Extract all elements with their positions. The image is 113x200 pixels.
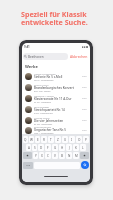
staticText: mehr xyxy=(82,119,87,122)
staticText: D xyxy=(40,146,43,150)
button[interactable]: E xyxy=(35,136,40,143)
button[interactable]: M xyxy=(73,152,79,159)
button[interactable]: JOHANNES BRAHMS xyxy=(25,126,87,134)
staticText: RV 269 · Violinkonzert xyxy=(34,123,53,125)
button[interactable]: I xyxy=(69,136,75,143)
staticText: P xyxy=(85,138,87,142)
staticText: Q xyxy=(24,138,27,142)
staticText: Die vier Jahreszeiten xyxy=(34,119,64,123)
staticText: BWV 1048 · Konzert xyxy=(34,90,51,92)
staticText: Sinfonie Nr. 5 c-Moll xyxy=(34,75,63,79)
button[interactable]: Shift xyxy=(23,152,32,159)
button[interactable]: S xyxy=(32,144,37,151)
button[interactable]: A xyxy=(26,144,31,151)
button[interactable]: N xyxy=(66,152,72,159)
button[interactable]: U xyxy=(62,136,68,143)
staticText: M xyxy=(75,154,78,158)
button[interactable]: B xyxy=(59,152,65,159)
staticText: 9:41 xyxy=(24,45,30,49)
staticText: Klaviersonate Nr. 11 A-Dur xyxy=(34,97,72,101)
staticText: X xyxy=(41,154,43,158)
staticText: B xyxy=(61,154,64,158)
staticText: mehr xyxy=(82,86,87,89)
button[interactable]: C xyxy=(45,152,51,159)
button[interactable]: Search xyxy=(81,161,89,169)
button[interactable]: X xyxy=(39,152,44,159)
staticText: FRANZ SCHUBERT xyxy=(34,106,50,108)
button[interactable]: Q xyxy=(23,136,28,143)
staticText: A xyxy=(28,146,30,150)
staticText: G xyxy=(54,146,57,150)
button[interactable]: Delete xyxy=(80,152,89,159)
staticText: WOLFGANG A. MOZART xyxy=(34,95,54,97)
staticText: JOHANN S. BACH xyxy=(34,84,49,86)
staticText: Brandenburgisches Konzert xyxy=(34,86,74,90)
staticText: Werke xyxy=(25,64,38,69)
staticText: Z xyxy=(57,138,59,142)
staticText: T xyxy=(50,138,52,142)
staticText: mehr xyxy=(82,108,87,111)
button[interactable]: W xyxy=(29,136,34,143)
staticText: WoO 1 · Orchesterwerk xyxy=(34,132,54,134)
button[interactable]: Abbrechen xyxy=(70,54,88,59)
staticText: E xyxy=(37,138,39,142)
button[interactable]: G xyxy=(52,144,58,151)
button[interactable]: F xyxy=(45,144,51,151)
button[interactable]: LUDWIG VAN BEETHOVEN xyxy=(25,71,87,82)
button[interactable]: V xyxy=(52,152,58,159)
button[interactable]: O xyxy=(76,136,82,143)
staticText: Speziell für Klassik entwickelte Suche. xyxy=(21,9,88,27)
button[interactable]: T xyxy=(48,136,54,143)
staticText: N xyxy=(68,154,71,158)
staticText: Ungarischer Tanz Nr. 5 xyxy=(34,128,67,132)
button[interactable]: Numbers xyxy=(23,162,33,169)
staticText: mehr xyxy=(82,75,87,78)
button[interactable]: P xyxy=(83,136,89,143)
staticText: Streichquartett Nr. 14 xyxy=(34,108,65,112)
button[interactable]: H xyxy=(59,144,65,151)
button[interactable]: ANTONIO VIVALDI xyxy=(25,115,87,126)
staticText: F xyxy=(47,146,49,150)
staticText: Beethoven xyxy=(28,55,44,59)
button[interactable]: Z xyxy=(55,136,61,143)
staticText: J xyxy=(69,146,70,150)
staticText: V xyxy=(54,154,56,158)
button[interactable]: D xyxy=(38,144,44,151)
button[interactable]: Beethoven xyxy=(23,53,68,60)
staticText: ANTONIO VIVALDI xyxy=(34,117,50,119)
button[interactable]: Y xyxy=(33,152,38,159)
staticText: U xyxy=(64,138,67,142)
staticText: mehr xyxy=(82,129,87,132)
staticText: W xyxy=(30,138,33,142)
button[interactable]: R xyxy=(41,136,47,143)
button[interactable]: J xyxy=(66,144,72,151)
staticText: H xyxy=(61,146,64,150)
button[interactable]: WOLFGANG A. MOZART xyxy=(25,93,87,104)
button[interactable]: L xyxy=(80,144,86,151)
staticText: D 810 · Kammermusik xyxy=(34,112,53,114)
staticText: mehr xyxy=(82,97,87,100)
staticText: KV 331 · Klavierwerk xyxy=(34,101,52,103)
staticText: O xyxy=(78,138,81,142)
staticText: JOHANNES BRAHMS xyxy=(34,126,51,128)
staticText: LUDWIG VAN BEETHOVEN xyxy=(34,73,56,75)
button[interactable]: K xyxy=(73,144,79,151)
staticText: I xyxy=(71,138,73,142)
staticText: C xyxy=(47,154,49,158)
staticText: R xyxy=(43,138,45,142)
staticText: Y xyxy=(35,154,37,158)
button[interactable]: JOHANN S. BACH xyxy=(25,82,87,93)
staticText: K xyxy=(75,146,77,150)
staticText: L xyxy=(82,146,84,150)
staticText: S xyxy=(34,146,36,150)
staticText: 123 xyxy=(26,164,30,167)
button[interactable]: FRANZ SCHUBERT xyxy=(25,104,87,115)
staticText: Op. 67 · Orchesterwerk xyxy=(34,79,54,81)
staticText: Abbrechen xyxy=(70,54,88,59)
